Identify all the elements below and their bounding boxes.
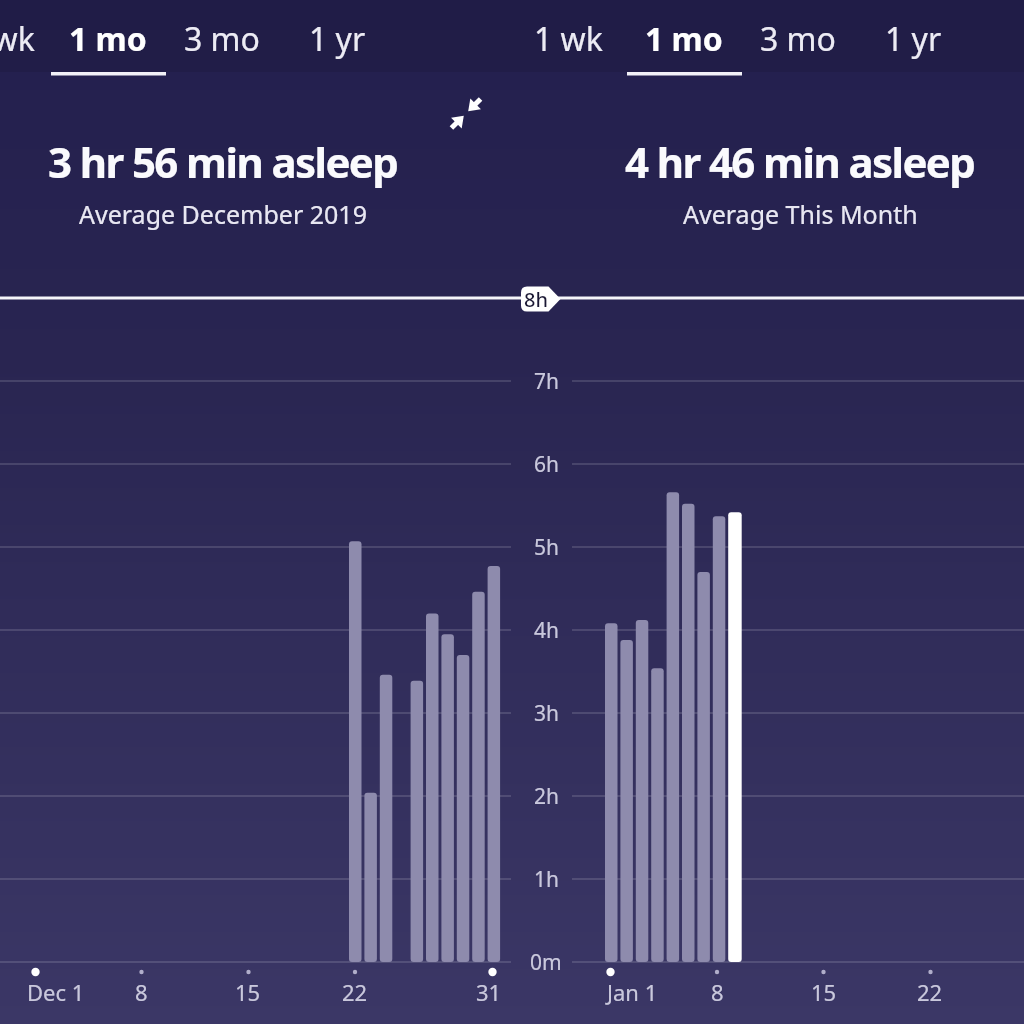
staticText: 1 wk	[534, 17, 603, 61]
staticText: 1 mo	[69, 17, 147, 61]
staticText: 0m	[530, 948, 562, 977]
staticText: 15	[811, 977, 837, 1007]
staticText: Average This Month	[683, 197, 918, 231]
staticText: 15	[235, 977, 261, 1007]
staticText: 1 wk	[0, 17, 35, 61]
staticText: 4 hr 46 min asleep	[625, 133, 975, 190]
staticText: 1 yr	[885, 17, 942, 61]
staticText: Jan 1	[607, 977, 658, 1007]
staticText: 8h	[524, 286, 548, 313]
staticText: 22	[917, 977, 943, 1007]
staticText: 22	[342, 977, 368, 1007]
staticText: Dec 1	[27, 977, 85, 1007]
staticText: 8	[711, 977, 724, 1007]
button[interactable]: 1 mo	[69, 17, 147, 61]
staticText: 3 hr 56 min asleep	[48, 133, 398, 190]
button[interactable]: 3 mo	[184, 17, 260, 61]
staticText: 6h	[534, 450, 559, 479]
staticText: 1h	[534, 865, 559, 894]
staticText: 31	[476, 977, 502, 1007]
staticText: 5h	[534, 533, 559, 562]
staticText: 7h	[534, 367, 559, 396]
staticText: 2h	[534, 782, 559, 811]
staticText: Average December 2019	[79, 197, 367, 231]
button[interactable]: 3 mo	[760, 17, 836, 61]
staticText: 1 yr	[309, 17, 366, 61]
button[interactable]: 1 yr	[309, 17, 366, 61]
button[interactable]: 1 wk	[534, 17, 603, 61]
button[interactable]: 1 mo	[645, 17, 723, 61]
staticText: 3h	[534, 699, 559, 728]
staticText: 3 mo	[760, 17, 836, 61]
staticText: 4h	[534, 616, 559, 645]
button[interactable]: 1 yr	[885, 17, 942, 61]
staticText: 1 mo	[645, 17, 723, 61]
staticText: 8	[135, 977, 148, 1007]
staticText: 3 mo	[184, 17, 260, 61]
button[interactable]	[444, 92, 488, 136]
button[interactable]: 1 wk	[0, 17, 35, 61]
